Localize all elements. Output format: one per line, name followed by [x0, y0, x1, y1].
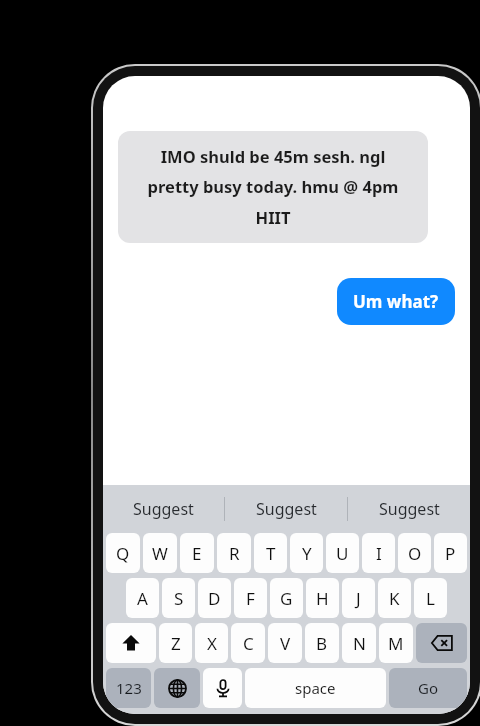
button[interactable]: Change keyboard language — [154, 668, 200, 708]
button[interactable]: B — [305, 623, 339, 663]
staticText: S — [174, 587, 184, 610]
staticText: H — [316, 587, 329, 610]
staticText: I — [376, 542, 382, 565]
staticText: Suggest — [256, 498, 317, 520]
button[interactable]: L — [414, 578, 447, 618]
button[interactable]: Um what? — [337, 278, 455, 325]
staticText: O — [408, 542, 422, 565]
button[interactable]: F — [234, 578, 267, 618]
button[interactable]: Y — [290, 533, 323, 573]
staticText: R — [229, 542, 240, 565]
button[interactable]: V — [268, 623, 302, 663]
button[interactable]: E — [180, 533, 214, 573]
button[interactable]: Shift — [106, 623, 156, 663]
staticText: T — [266, 542, 276, 565]
staticText: IMO shuld be 45m sesh. ngl pretty busy t… — [134, 145, 412, 229]
button[interactable]: P — [434, 533, 467, 573]
staticText: space — [295, 678, 336, 698]
button[interactable]: O — [398, 533, 431, 573]
button[interactable]: Suggest — [348, 485, 470, 533]
staticText: C — [243, 632, 254, 655]
button[interactable]: H — [306, 578, 339, 618]
staticText: D — [208, 587, 221, 610]
button[interactable]: Backspace — [416, 623, 467, 663]
button[interactable]: M — [379, 623, 413, 663]
staticText: M — [388, 632, 404, 655]
button[interactable]: 123 — [106, 668, 151, 708]
staticText: J — [356, 587, 361, 610]
button[interactable]: J — [342, 578, 375, 618]
button[interactable]: S — [162, 578, 195, 618]
button[interactable]: R — [217, 533, 251, 573]
button[interactable]: I — [362, 533, 395, 573]
staticText: Suggest — [379, 498, 440, 520]
button[interactable]: A — [126, 578, 159, 618]
button[interactable]: G — [270, 578, 303, 618]
staticText: E — [192, 542, 202, 565]
staticText: F — [246, 587, 255, 610]
button[interactable]: K — [378, 578, 411, 618]
staticText: N — [353, 632, 366, 655]
button[interactable]: Z — [159, 623, 192, 663]
button[interactable]: Suggest — [225, 485, 347, 533]
button[interactable]: IMO shuld be 45m sesh. ngl pretty busy t… — [118, 131, 428, 243]
staticText: Q — [116, 542, 130, 565]
button[interactable]: Go — [389, 668, 467, 708]
button[interactable]: Q — [106, 533, 140, 573]
button[interactable]: space — [245, 668, 386, 708]
staticText: Z — [171, 632, 181, 655]
button[interactable]: Suggest — [103, 485, 224, 533]
button[interactable]: U — [326, 533, 359, 573]
staticText: A — [137, 587, 148, 610]
staticText: P — [445, 542, 456, 565]
button[interactable]: X — [195, 623, 228, 663]
staticText: B — [316, 632, 328, 655]
staticText: L — [426, 587, 435, 610]
staticText: Y — [302, 542, 312, 565]
button[interactable]: Voice input — [203, 668, 242, 708]
button[interactable]: N — [342, 623, 376, 663]
staticText: X — [207, 632, 217, 655]
staticText: K — [389, 587, 400, 610]
button[interactable]: T — [254, 533, 287, 573]
staticText: 123 — [116, 678, 142, 698]
staticText: U — [336, 542, 349, 565]
staticText: Um what? — [353, 290, 439, 313]
button[interactable]: W — [143, 533, 177, 573]
staticText: G — [280, 587, 293, 610]
staticText: Suggest — [133, 498, 194, 520]
staticText: W — [152, 542, 168, 565]
button[interactable]: D — [198, 578, 231, 618]
staticText: V — [280, 632, 291, 655]
button[interactable]: C — [231, 623, 265, 663]
staticText: Go — [418, 678, 438, 698]
